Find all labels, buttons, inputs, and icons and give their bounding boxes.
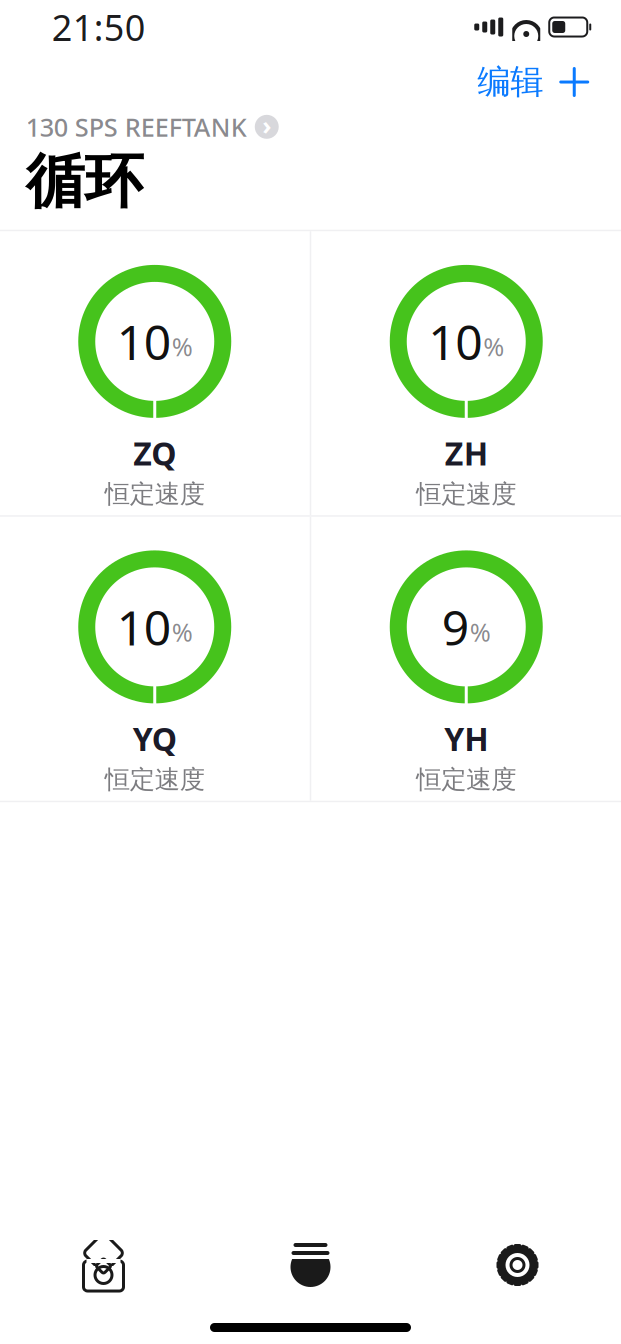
staticText: %	[172, 615, 193, 649]
staticText: ZQ	[133, 432, 176, 474]
staticText: %	[172, 330, 193, 363]
staticText: 10	[117, 309, 171, 373]
staticText: 恒定速度	[105, 478, 205, 509]
staticText: 循环	[26, 146, 144, 218]
button[interactable]: 10	[0, 231, 310, 515]
button[interactable]: 添加	[551, 59, 597, 105]
staticText: %	[483, 330, 504, 363]
button[interactable]: 130 SPS REEFTANK	[26, 110, 279, 144]
staticText: ZH	[445, 432, 488, 474]
staticText: 10	[117, 595, 171, 659]
staticText: 恒定速度	[416, 764, 516, 795]
button[interactable]: 10	[0, 517, 310, 801]
staticText: 恒定速度	[105, 764, 205, 795]
staticText: YH	[444, 717, 488, 760]
staticText: YQ	[133, 717, 177, 760]
button[interactable]: 循环	[207, 1230, 414, 1300]
button[interactable]: 编辑	[469, 55, 551, 108]
staticText: 编辑	[477, 61, 543, 102]
button[interactable]: 设置	[414, 1230, 621, 1300]
staticText: 恒定速度	[416, 478, 516, 509]
staticText: 10	[428, 309, 482, 373]
button[interactable]: 首页	[0, 1230, 207, 1300]
button[interactable]: 9	[311, 517, 621, 801]
staticText: 9	[442, 595, 469, 659]
staticText: 130 SPS REEFTANK	[26, 110, 247, 144]
staticText: ›	[262, 108, 271, 142]
staticText: %	[470, 615, 491, 649]
staticText: 21:50	[52, 3, 146, 51]
button[interactable]: 10	[311, 231, 621, 515]
